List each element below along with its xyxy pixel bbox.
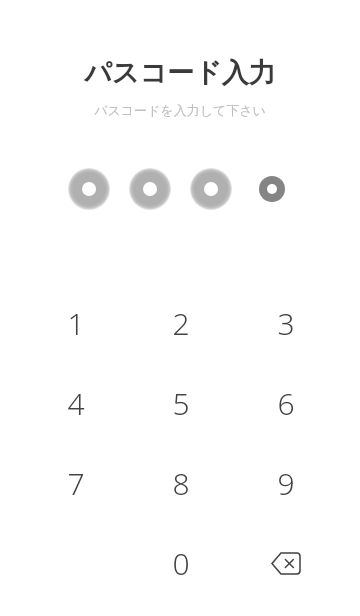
staticText: 3 bbox=[277, 303, 295, 344]
staticText: 2 bbox=[172, 303, 190, 344]
button[interactable]: 8 bbox=[128, 443, 233, 523]
button[interactable]: 5 bbox=[128, 363, 233, 443]
button[interactable]: 9 bbox=[233, 443, 338, 523]
button[interactable]: 4 bbox=[23, 363, 128, 443]
button[interactable]: 1 bbox=[23, 283, 128, 363]
staticText: 0 bbox=[172, 543, 190, 584]
staticText: パスコード入力 bbox=[84, 56, 276, 90]
staticText: 7 bbox=[67, 463, 85, 504]
button[interactable]: 3 bbox=[233, 283, 338, 363]
button[interactable]: Backspace bbox=[233, 523, 338, 603]
button[interactable]: 2 bbox=[128, 283, 233, 363]
staticText: 4 bbox=[67, 383, 85, 424]
staticText: パスコードを入力して下さい bbox=[94, 102, 266, 118]
staticText: 1 bbox=[67, 303, 85, 344]
staticText: 5 bbox=[172, 383, 190, 424]
button[interactable]: 0 bbox=[128, 523, 233, 603]
button[interactable]: 7 bbox=[23, 443, 128, 523]
staticText: 8 bbox=[172, 463, 190, 504]
staticText: 6 bbox=[277, 383, 295, 424]
staticText: 9 bbox=[277, 463, 295, 504]
button[interactable]: 6 bbox=[233, 363, 338, 443]
